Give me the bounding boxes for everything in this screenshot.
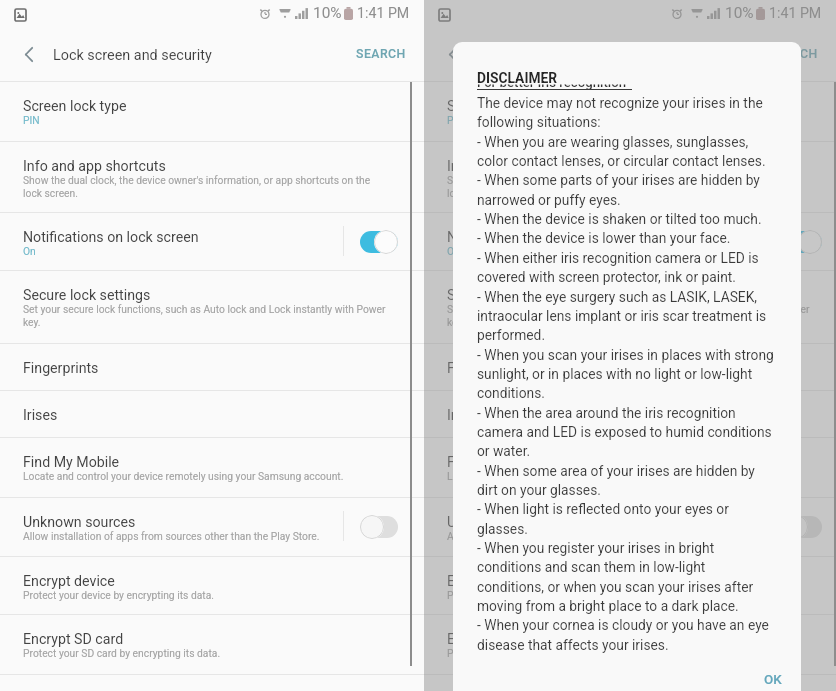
staticText: Info and app shortcuts	[447, 158, 590, 175]
staticText: Fingerprints	[447, 360, 523, 377]
staticText: or water.	[477, 443, 531, 459]
button[interactable]: Encrypt device	[424, 556, 836, 614]
button[interactable]: Back	[424, 28, 474, 81]
button[interactable]: Find My Mobile	[0, 437, 424, 497]
staticText: conditions.	[477, 385, 545, 401]
staticText: - When you register your irises in brigh…	[477, 540, 715, 556]
staticText: For better iris recognition	[477, 75, 626, 90]
staticText: PIN	[23, 114, 40, 126]
button[interactable]: SEARCH	[340, 28, 424, 81]
staticText: 1:41 PM	[357, 5, 410, 22]
button[interactable]: Screen lock type	[424, 81, 836, 141]
button[interactable]: Turn on	[360, 515, 398, 539]
button[interactable]: Notifications on lock screen	[0, 212, 424, 270]
button[interactable]: Info and app shortcuts	[424, 141, 836, 212]
button[interactable]: Notifications on lock screen	[424, 212, 836, 270]
staticText: SEARCH	[768, 47, 818, 61]
button[interactable]: Screen lock type	[0, 81, 424, 141]
staticText: conditions and scan them in low-light	[477, 559, 706, 575]
staticText: Screen lock type	[23, 98, 127, 115]
staticText: key.	[23, 316, 41, 328]
staticText: - When some parts of your irises are hid…	[477, 172, 760, 188]
staticText: 10%	[725, 4, 754, 22]
button[interactable]: Fingerprints	[0, 343, 424, 390]
staticText: narrowed or puffy eyes.	[477, 192, 621, 208]
button[interactable]: Unknown sources	[424, 497, 836, 556]
staticText: On	[23, 245, 36, 257]
staticText: performed.	[477, 327, 546, 343]
staticText: PIN	[447, 114, 464, 126]
staticText: Locate and control your device remotely …	[23, 470, 344, 482]
staticText: 10%	[313, 4, 342, 22]
staticText: - When the device is shaken or tilted to…	[477, 211, 762, 227]
staticText: - When either iris recognition camera or…	[477, 250, 759, 266]
staticText: SEARCH	[356, 47, 406, 61]
staticText: - When the device is lower than your fac…	[477, 230, 731, 246]
staticText: - When light is reflected onto your eyes…	[477, 501, 729, 517]
staticText: On	[447, 245, 460, 257]
staticText: Set your secure lock functions, such as …	[23, 303, 386, 315]
staticText: Unknown sources	[447, 514, 560, 531]
button[interactable]: Unknown sources	[0, 497, 424, 556]
button[interactable]: Secure lock settings	[0, 270, 424, 343]
staticText: OK	[764, 672, 782, 688]
button[interactable]: SEARCH	[752, 28, 836, 81]
button[interactable]: Turn off	[784, 230, 822, 254]
staticText: Info and app shortcuts	[23, 158, 166, 175]
staticText: - When some area of your irises are hidd…	[477, 463, 755, 479]
staticText: Encrypt device	[23, 573, 115, 590]
staticText: - When you are wearing glasses, sunglass…	[477, 134, 749, 150]
staticText: Notifications on lock screen	[23, 229, 199, 246]
staticText: Lock screen and security	[53, 47, 212, 64]
staticText: lock screen.	[447, 187, 502, 199]
staticText: disease that affects your irises.	[477, 637, 669, 653]
staticText: DISCLAIMER	[477, 70, 558, 86]
staticText: Notifications on lock screen	[447, 229, 623, 246]
staticText: Find My Mobile	[447, 454, 544, 471]
staticText: Screen lock type	[447, 98, 551, 115]
staticText: glasses.	[477, 521, 528, 537]
staticText: - When the area around the iris recognit…	[477, 405, 736, 421]
button[interactable]: Find My Mobile	[424, 437, 836, 497]
button[interactable]: Turn off	[360, 230, 398, 254]
staticText: Encrypt SD card	[23, 631, 124, 648]
staticText: following situations:	[477, 114, 601, 130]
staticText: - When your cornea is cloudy or you have…	[477, 617, 769, 633]
button[interactable]: Secure lock settings	[424, 270, 836, 343]
button[interactable]: Turn on	[784, 515, 822, 539]
staticText: Protect your device by encrypting its da…	[23, 589, 215, 601]
staticText: Allow installation of apps from sources …	[23, 530, 320, 542]
button[interactable]: Irises	[0, 390, 424, 437]
button[interactable]: Info and app shortcuts	[0, 141, 424, 212]
staticText: Encrypt SD card	[447, 631, 548, 648]
staticText: color contact lenses, or circular contac…	[477, 153, 766, 169]
staticText: 1:41 PM	[769, 5, 822, 22]
staticText: Protect your SD card by encrypting its d…	[23, 647, 221, 659]
staticText: Protect your SD card by encrypting its d…	[447, 647, 645, 659]
staticText: Secure lock settings	[23, 287, 151, 304]
staticText: Encrypt device	[447, 573, 539, 590]
staticText: dirt on your glasses.	[477, 482, 601, 498]
staticText: key.	[447, 316, 465, 328]
staticText: Locate and control your device remotely …	[447, 470, 768, 482]
staticText: sunlight, or in places with no light or …	[477, 366, 753, 382]
button[interactable]: Encrypt SD card	[0, 614, 424, 674]
button[interactable]: Back	[0, 28, 50, 81]
staticText: The device may not recognize your irises…	[477, 95, 763, 111]
staticText: Fingerprints	[23, 360, 99, 377]
staticText: Show the dual clock, the device owner's …	[23, 174, 371, 186]
button[interactable]: Irises	[424, 390, 836, 437]
staticText: Find My Mobile	[23, 454, 120, 471]
button[interactable]: OK	[750, 661, 796, 691]
staticText: conditions, or when you scan your irises…	[477, 579, 754, 595]
staticText: Protect your device by encrypting its da…	[447, 589, 639, 601]
staticText: Secure lock settings	[447, 287, 575, 304]
staticText: lock screen.	[23, 187, 78, 199]
button[interactable]: Fingerprints	[424, 343, 836, 390]
staticText: Set your secure lock functions, such as …	[447, 303, 810, 315]
button[interactable]: Encrypt SD card	[424, 614, 836, 674]
button[interactable]: Encrypt device	[0, 556, 424, 614]
staticText: - When the eye surgery such as LASIK, LA…	[477, 289, 758, 305]
staticText: Unknown sources	[23, 514, 136, 531]
